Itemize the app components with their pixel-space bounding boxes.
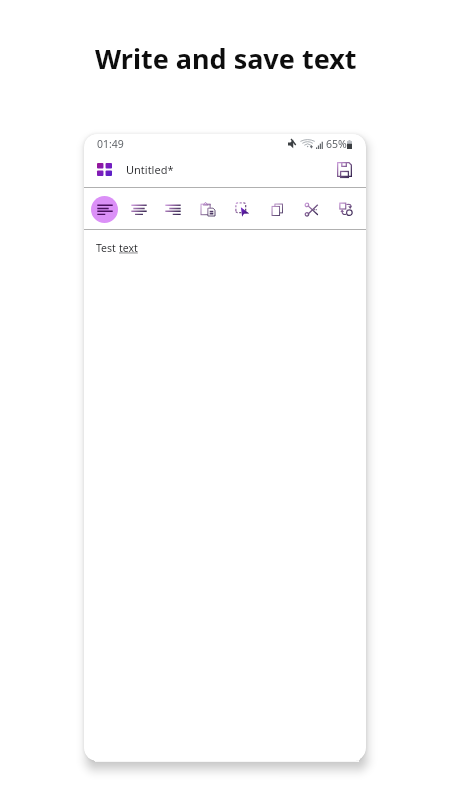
staticText: 01:49 <box>97 137 124 151</box>
button[interactable]: Text editor <box>84 230 366 761</box>
staticText: Untitled* <box>126 162 174 177</box>
button[interactable]: Align center <box>123 193 155 225</box>
button[interactable]: Cut <box>295 193 327 225</box>
button[interactable]: Align right <box>157 193 189 225</box>
staticText: Test <box>96 241 119 255</box>
staticText: 65% <box>326 137 347 151</box>
staticText: text <box>119 241 138 255</box>
button[interactable]: Transform <box>330 193 362 225</box>
button[interactable]: Copy <box>261 193 293 225</box>
button[interactable]: Untitled* <box>122 157 178 183</box>
button[interactable]: Select all <box>226 193 258 225</box>
button[interactable]: Paste <box>192 193 224 225</box>
button[interactable]: Align left <box>91 196 118 223</box>
staticText: Write and save text <box>95 40 357 77</box>
button[interactable]: Open menu <box>97 163 112 176</box>
button[interactable]: Save <box>337 162 352 177</box>
